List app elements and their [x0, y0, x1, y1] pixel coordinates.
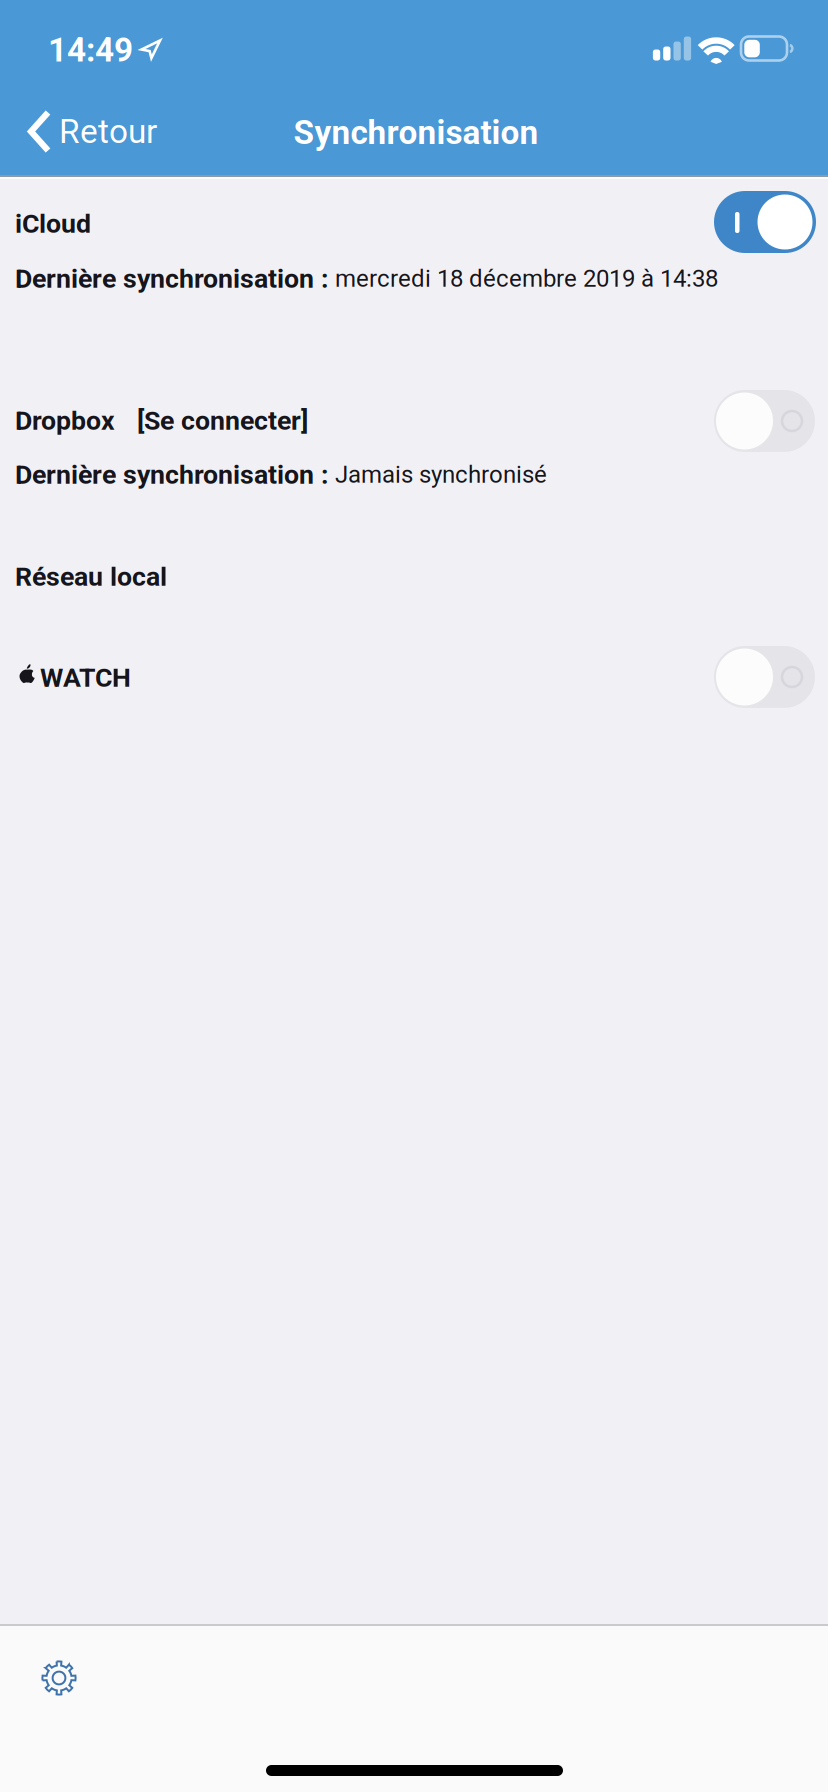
staticText: Réseau local: [15, 561, 167, 592]
button[interactable]: Synchronisation Dropbox: [714, 390, 815, 452]
button[interactable]: Retour: [0, 87, 175, 175]
staticText: Synchronisation: [293, 113, 538, 152]
staticText: Dernière synchronisation :: [15, 459, 329, 490]
button[interactable]: [Se connecter]: [115, 399, 308, 442]
staticText: WATCH: [40, 662, 131, 693]
button[interactable]: Réglages: [31, 1650, 87, 1706]
staticText: [Se connecter]: [137, 405, 308, 436]
staticText: 14:49: [48, 30, 133, 70]
staticText: Retour: [59, 112, 157, 151]
button[interactable]: Synchronisation iCloud: [714, 191, 816, 253]
staticText: mercredi 18 décembre 2019 à 14:38: [329, 265, 718, 293]
staticText: Jamais synchronisé: [329, 461, 547, 489]
button[interactable]: Synchronisation Apple Watch: [714, 646, 815, 708]
staticText: Dropbox: [15, 405, 115, 436]
staticText: iCloud: [15, 208, 91, 239]
staticText: Dernière synchronisation :: [15, 263, 329, 294]
